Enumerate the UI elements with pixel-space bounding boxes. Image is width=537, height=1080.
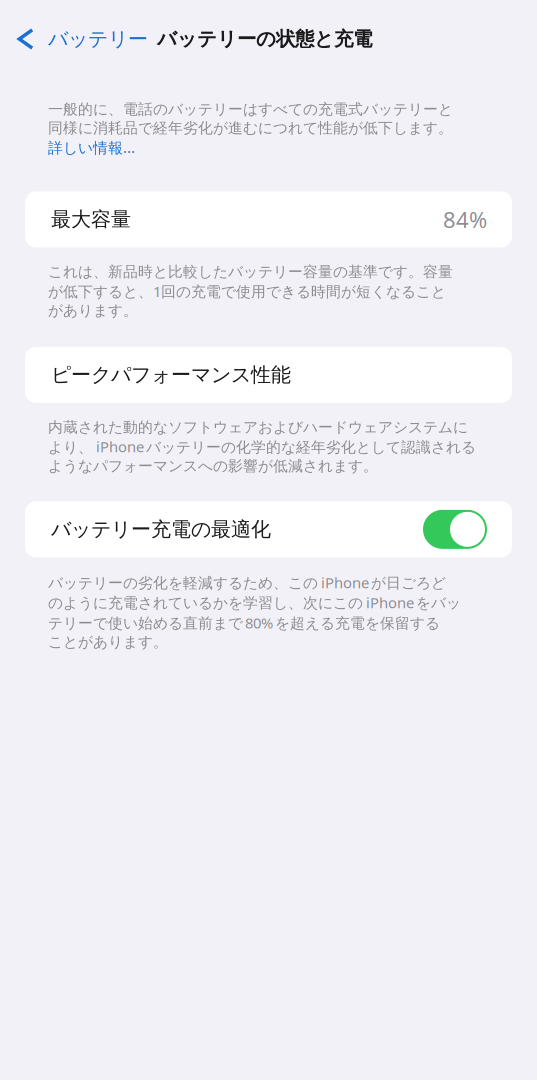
staticText: バッテリーの状態と充電 xyxy=(157,27,372,51)
staticText: 一般的に、電話のバッテリーはすべての充電式バッテリーと 同様に消耗品で経年劣化が… xyxy=(48,100,453,137)
button[interactable]: バッテリー xyxy=(0,0,154,72)
staticText: ピークパフォーマンス性能 xyxy=(51,362,291,387)
staticText: バッテリー充電の最適化 xyxy=(51,517,271,542)
staticText: バッテリー xyxy=(48,26,148,52)
staticText: 内蔵された動的なソフトウェアおよびハードウェアシステムに より、 iPhone … xyxy=(48,418,476,475)
staticText: 最大容量 xyxy=(51,207,131,232)
staticText: バッテリーの劣化を軽減するため、この iPhone が日ごろど のように充電され… xyxy=(48,572,461,651)
staticText: 詳しい情報... xyxy=(48,137,135,157)
button[interactable]: バッテリー充電の最適化 xyxy=(0,501,537,557)
staticText: 84% xyxy=(443,204,487,234)
button[interactable]: 詳しい情報... xyxy=(48,137,135,157)
button[interactable]: ピークパフォーマンス性能 xyxy=(0,347,537,403)
button[interactable]: 最大容量 xyxy=(0,191,537,247)
staticText: これは、新品時と比較したバッテリー容量の基準です。容量 が低下すると、1回の充電… xyxy=(48,262,453,320)
